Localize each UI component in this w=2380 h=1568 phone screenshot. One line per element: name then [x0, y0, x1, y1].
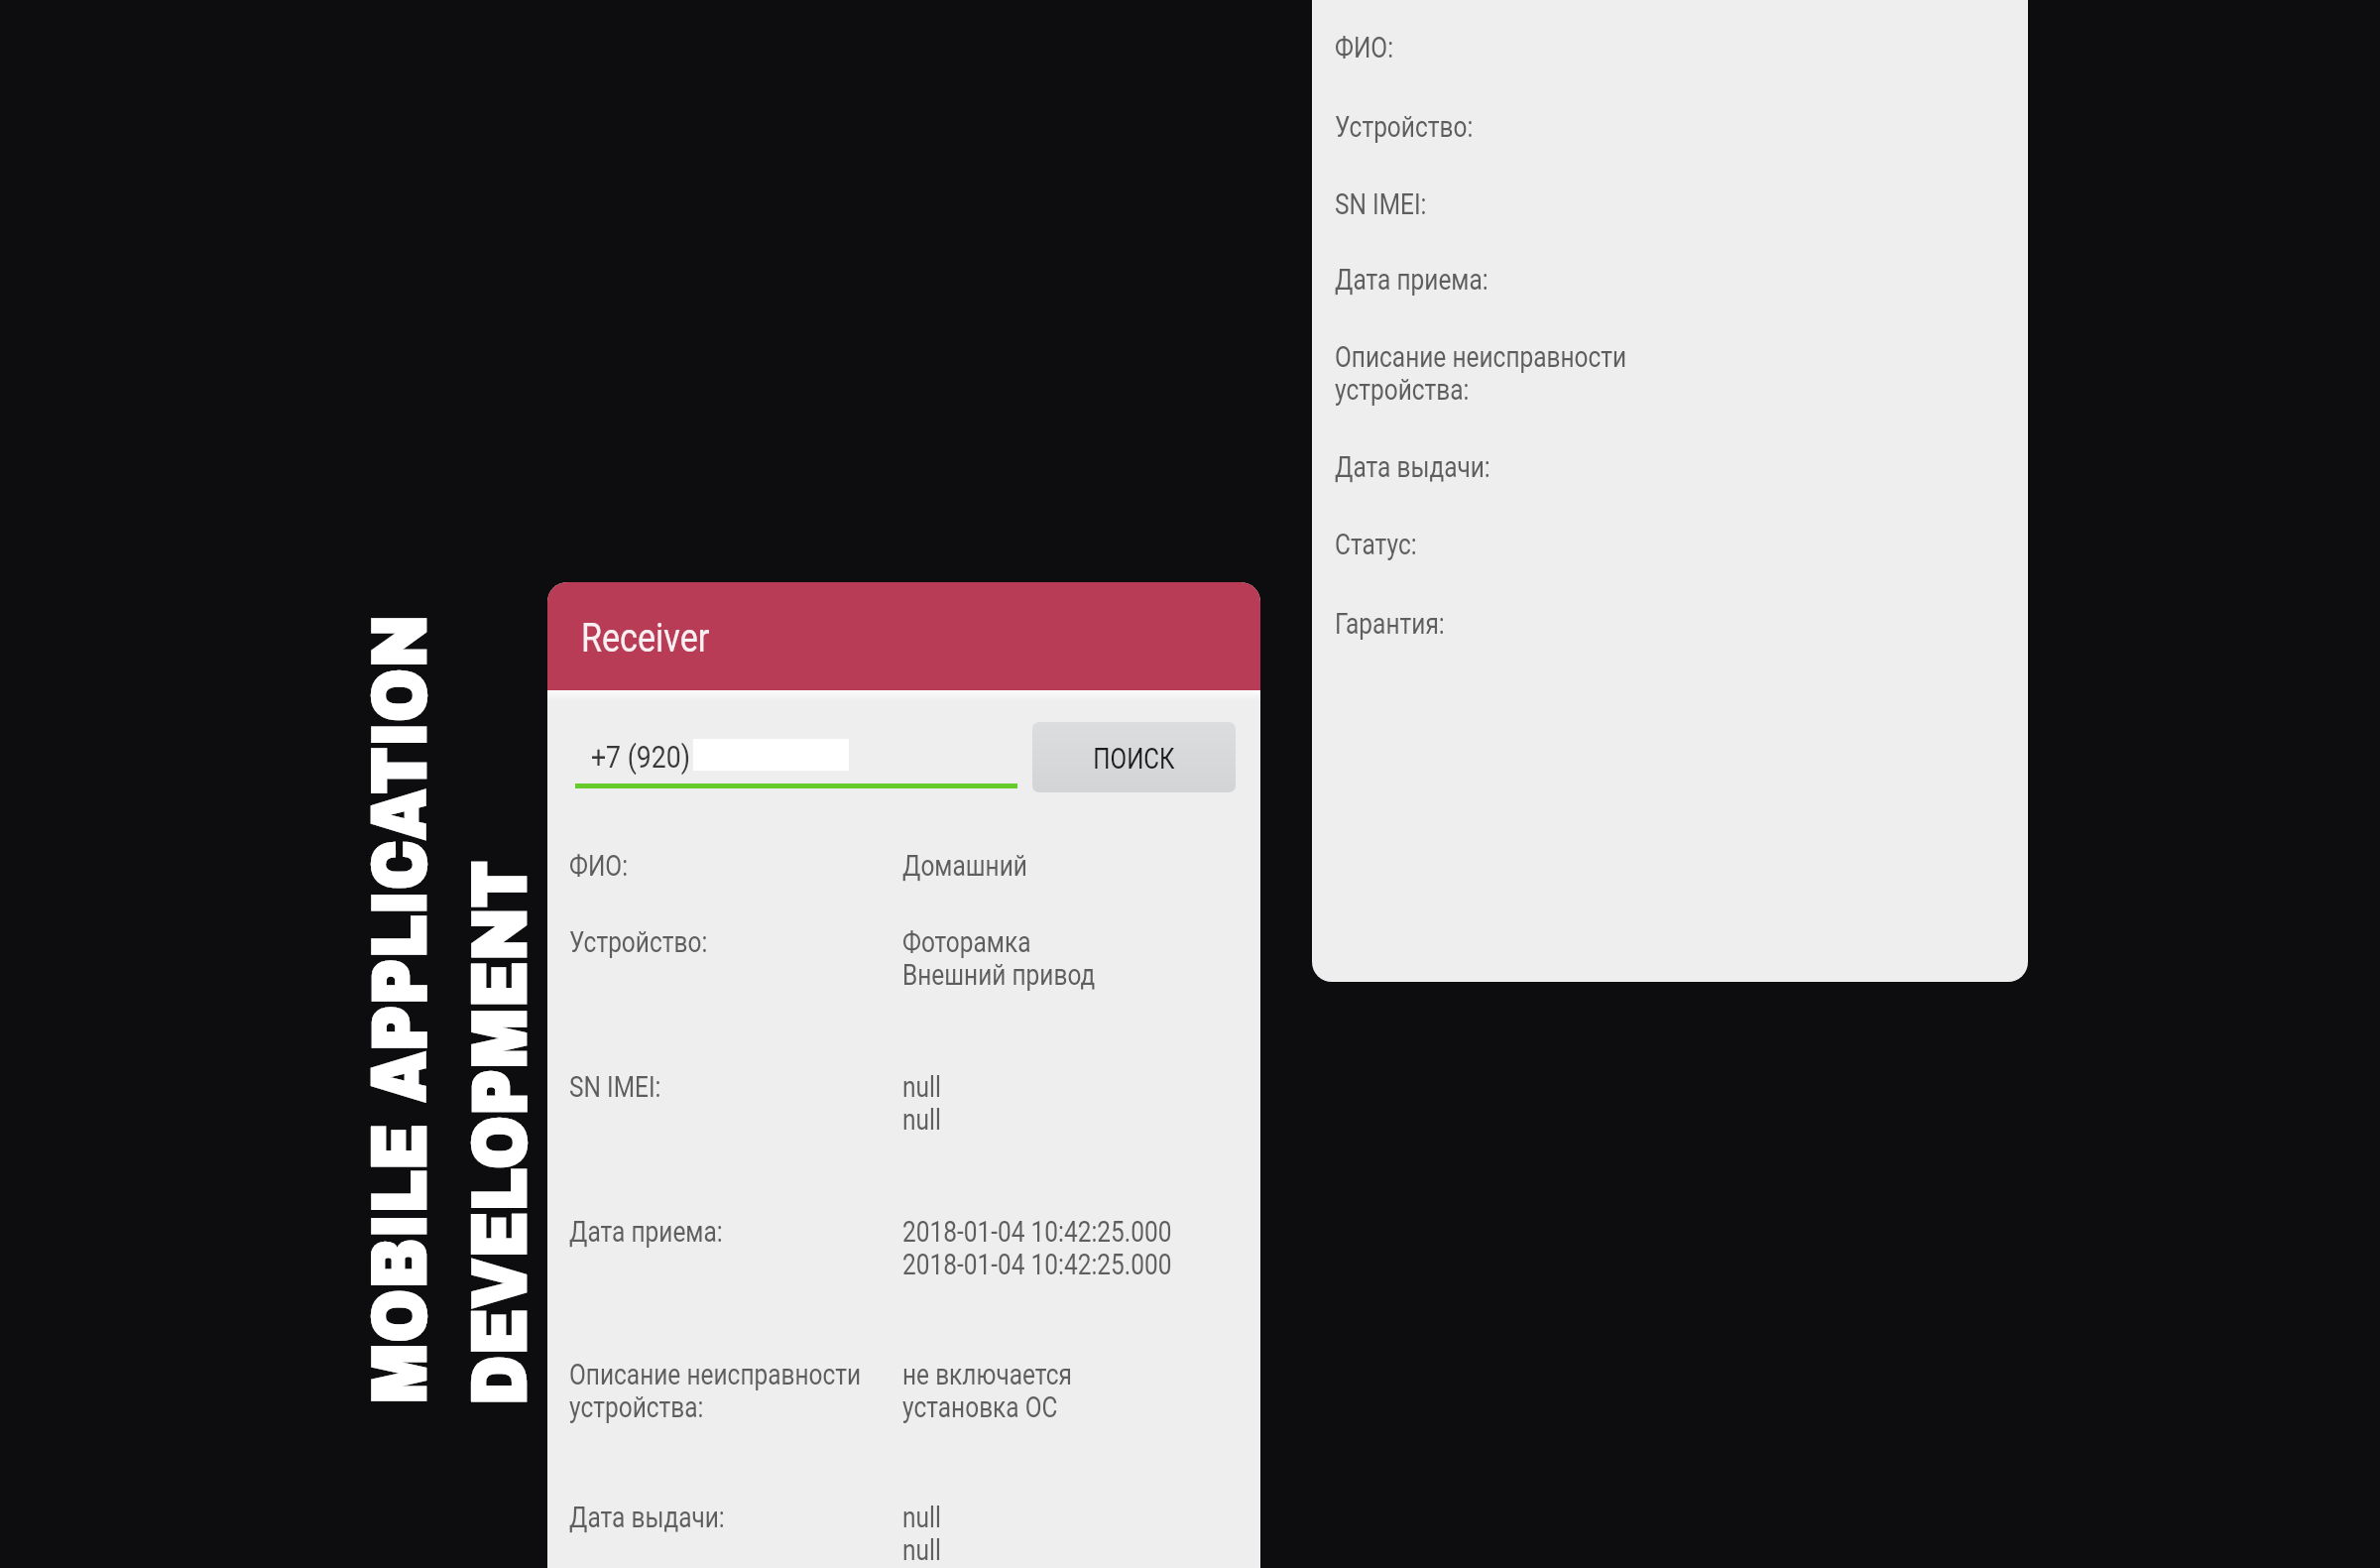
staticText: null null [902, 1501, 941, 1567]
staticText: Дата выдачи: [569, 1501, 725, 1534]
staticText: +7 (920) [591, 738, 691, 776]
button[interactable]: Receiver app bar [547, 582, 1260, 690]
staticText: ПОИСК [1093, 742, 1175, 776]
staticText: Receiver [581, 614, 710, 662]
staticText: null null [902, 1070, 941, 1137]
staticText: Домашний [902, 849, 1028, 883]
staticText: не включается установка ОС [902, 1358, 1072, 1424]
staticText: Статус: [1335, 528, 1417, 561]
staticText: MOBILE APPLICATION [358, 614, 441, 1404]
staticText: Дата приема: [569, 1215, 723, 1249]
staticText: Дата выдачи: [1335, 450, 1491, 484]
staticText: Устройство: [569, 925, 708, 959]
staticText: Описание неисправности устройства: [569, 1358, 861, 1424]
staticText: DEVELOPMENT [458, 861, 541, 1406]
staticText: Дата приема: [1335, 263, 1488, 297]
staticText: ФИО: [569, 849, 628, 883]
staticText: ФИО: [1335, 31, 1393, 64]
staticText: Гарантия: [1335, 607, 1445, 641]
staticText: Фоторамка Внешний привод [902, 925, 1095, 992]
staticText: Описание неисправности устройства: [1335, 340, 1627, 407]
button[interactable]: ПОИСК [1032, 722, 1236, 792]
staticText: Устройство: [1335, 110, 1473, 144]
staticText: SN IMEI: [569, 1070, 662, 1104]
staticText: SN IMEI: [1335, 187, 1427, 221]
staticText: 2018-01-04 10:42:25.000 2018-01-04 10:42… [902, 1215, 1172, 1281]
